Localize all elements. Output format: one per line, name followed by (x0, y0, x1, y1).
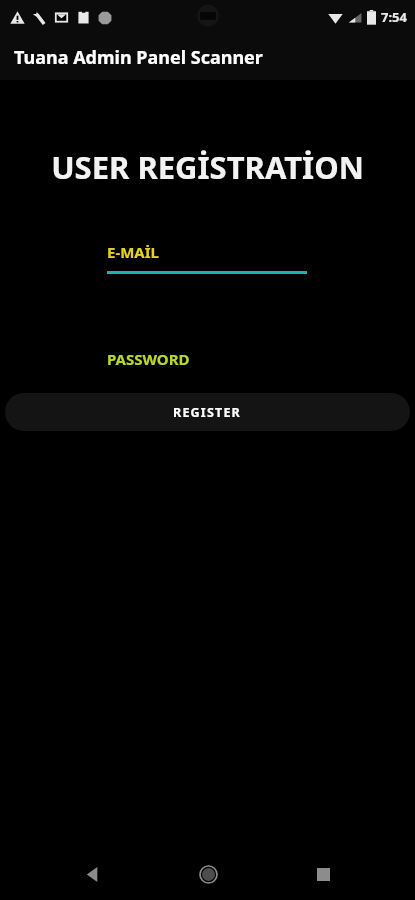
staticText: PASSWORD (107, 349, 190, 369)
button[interactable]: Home (184, 850, 232, 898)
staticText: 7:54 (381, 8, 407, 26)
button[interactable]: E-MAİL (107, 242, 307, 274)
staticText: REGISTER (173, 404, 242, 421)
staticText: USER REGİSTRATİON (0, 146, 415, 188)
button[interactable]: PASSWORD (107, 349, 307, 369)
staticText: Tuana Admin Panel Scanner (14, 45, 263, 70)
button[interactable]: REGISTER (5, 393, 410, 431)
staticText: E-MAİL (107, 242, 159, 262)
button[interactable]: Back (68, 850, 116, 898)
button[interactable]: Recent apps (299, 850, 347, 898)
